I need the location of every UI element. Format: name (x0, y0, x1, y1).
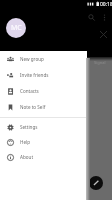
staticText: Help (20, 139, 31, 145)
staticText: Signal (94, 60, 106, 65)
staticText: Settings (20, 124, 38, 130)
staticText: MC (11, 23, 22, 33)
staticText: Note to Self (20, 104, 46, 110)
button[interactable]: Note to Self (0, 99, 87, 115)
button[interactable]: Profile (6, 18, 26, 38)
button[interactable]: Contacts (0, 83, 87, 99)
staticText: 00:18 (100, 1, 112, 8)
staticText: New group (20, 56, 44, 62)
staticText: Contacts (20, 88, 39, 94)
button[interactable]: Help (0, 134, 87, 150)
button[interactable]: Search (84, 10, 98, 24)
button[interactable]: New message (89, 176, 103, 190)
button[interactable]: Invite friends (0, 67, 87, 83)
button[interactable]: New group (0, 51, 87, 67)
button[interactable]: More options (97, 10, 111, 24)
button[interactable]: Settings (0, 119, 87, 135)
button[interactable]: About (0, 149, 87, 165)
button[interactable]: Close (96, 27, 110, 41)
staticText: Invite friends (20, 72, 49, 78)
staticText: About (20, 154, 34, 160)
